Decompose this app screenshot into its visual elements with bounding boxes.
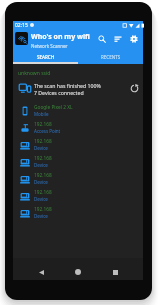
button[interactable]: The scan has finished 100% xyxy=(13,81,143,95)
staticText: 7 Devices connected xyxy=(34,89,84,96)
staticText: Device xyxy=(34,179,48,185)
staticText: Network Scanner xyxy=(31,43,68,49)
staticText: 192.168 xyxy=(34,121,52,128)
button[interactable]: Recents xyxy=(106,263,124,281)
staticText: 192.168 xyxy=(34,189,52,196)
button[interactable]: Search xyxy=(94,31,110,47)
button[interactable]: Back xyxy=(32,263,50,281)
button[interactable]: RECENTS xyxy=(78,50,143,64)
staticText: Who's on my wifi xyxy=(31,32,90,42)
staticText: 192.168 xyxy=(34,138,52,145)
button[interactable]: 192.168 xyxy=(13,204,143,221)
button[interactable]: 192.168 xyxy=(13,119,143,136)
staticText: Device xyxy=(34,162,48,168)
button[interactable]: Google Pixel 2 XL xyxy=(13,102,143,119)
staticText: Google Pixel 2 XL xyxy=(34,104,73,111)
staticText: Mobile xyxy=(34,111,49,117)
staticText: 02:15 xyxy=(15,22,28,29)
staticText: Access Point xyxy=(34,128,61,134)
staticText: Device xyxy=(34,196,48,202)
button[interactable]: 192.168 xyxy=(13,136,143,153)
button[interactable]: Home xyxy=(69,263,87,281)
staticText: RECENTS xyxy=(101,54,121,60)
button[interactable]: 192.168 xyxy=(13,187,143,204)
staticText: 192.168 xyxy=(34,155,52,162)
button[interactable]: Refresh xyxy=(127,81,141,95)
button[interactable]: SEARCH xyxy=(13,50,78,64)
staticText: unknown ssid xyxy=(18,70,51,77)
button[interactable]: Settings xyxy=(126,31,142,47)
staticText: 192.168 xyxy=(34,172,52,179)
staticText: 192.168 xyxy=(34,206,52,213)
staticText: SEARCH xyxy=(37,54,54,60)
button[interactable]: 192.168 xyxy=(13,153,143,170)
staticText: The scan has finished 100% xyxy=(34,82,101,89)
staticText: Device xyxy=(34,145,48,151)
staticText: Device xyxy=(34,213,48,219)
button[interactable]: Sort xyxy=(110,31,126,47)
button[interactable]: 192.168 xyxy=(13,170,143,187)
